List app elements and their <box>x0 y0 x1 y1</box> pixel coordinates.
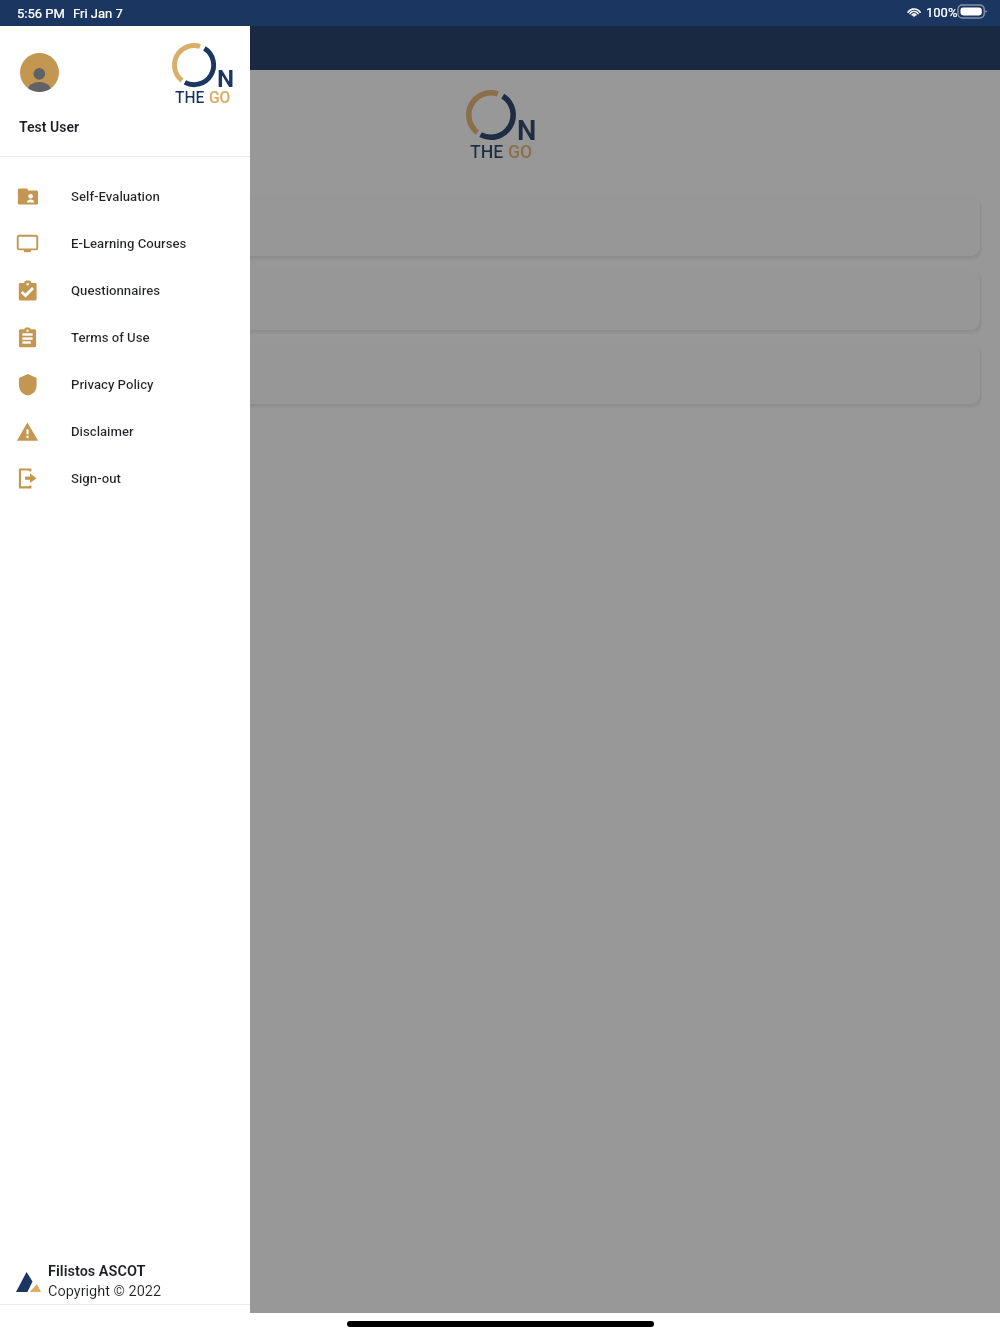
staticText: Privacy Policy <box>71 377 154 392</box>
other: Profile picture <box>20 53 59 92</box>
button[interactable]: Questionnaires <box>0 267 250 314</box>
button[interactable]: Menu card <box>20 344 980 404</box>
button[interactable]: E-Learning Courses <box>0 220 250 267</box>
button[interactable]: Sign-out <box>0 455 250 502</box>
staticText: GO <box>508 142 533 163</box>
button[interactable]: Profile picture <box>0 26 250 157</box>
staticText: 5:56 PM <box>17 6 65 21</box>
staticText: N <box>217 64 235 92</box>
staticText: Sign-out <box>71 471 121 486</box>
button[interactable]: Menu card <box>20 270 980 330</box>
staticText: Disclaimer <box>71 424 134 439</box>
staticText: E-Learning Courses <box>71 236 187 251</box>
button[interactable]: Disclaimer <box>0 408 250 455</box>
staticText: 100% <box>926 5 958 20</box>
staticText: THE <box>175 89 209 107</box>
staticText: N <box>517 114 537 146</box>
staticText: Copyright © 2022 <box>48 1283 162 1300</box>
staticText: THE <box>470 142 508 163</box>
staticText: Self-Evaluation <box>71 189 160 204</box>
staticText: Filistos ASCOT <box>48 1263 146 1280</box>
staticText: Terms of Use <box>71 330 150 345</box>
staticText: Questionnaires <box>71 283 161 298</box>
button[interactable]: Self-Evaluation <box>0 173 250 220</box>
staticText: Fri Jan 7 <box>73 6 123 21</box>
staticText: GO <box>209 89 231 107</box>
button[interactable]: Filistos ASCOT <box>0 1235 250 1304</box>
button[interactable]: Menu card <box>20 196 980 256</box>
staticText: Test User <box>19 119 80 135</box>
button[interactable]: Terms of Use <box>0 314 250 361</box>
button[interactable]: Privacy Policy <box>0 361 250 408</box>
